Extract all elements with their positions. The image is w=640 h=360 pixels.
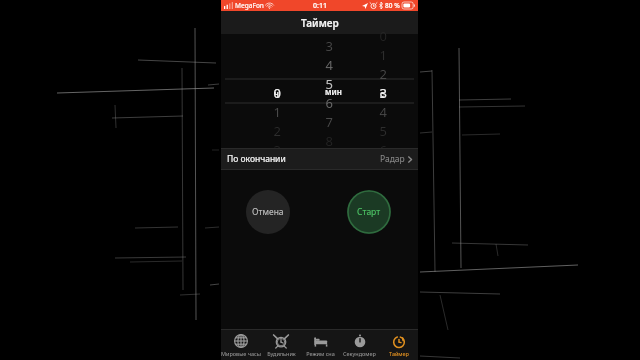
staticText: По окончании	[227, 153, 286, 165]
staticText: 6	[359, 141, 387, 159]
staticText: 0	[253, 84, 281, 102]
staticText: 4	[359, 103, 387, 121]
button[interactable]: По окончании	[221, 149, 418, 169]
staticText: 0	[359, 27, 387, 45]
button[interactable]: Будильник	[261, 330, 301, 360]
staticText: 3	[359, 84, 387, 102]
staticText: 2	[359, 65, 387, 83]
button[interactable]: Режим сна	[301, 330, 340, 360]
staticText: Будильник	[267, 350, 296, 357]
staticText: Отмена	[252, 206, 284, 218]
button[interactable]: Таймер	[379, 330, 418, 360]
staticText: 1	[359, 46, 387, 64]
staticText: 6	[305, 94, 333, 112]
staticText: 1	[253, 103, 281, 121]
staticText: Мировые часы	[221, 350, 261, 357]
staticText: ч	[274, 88, 279, 99]
staticText: 8	[305, 132, 333, 150]
button[interactable]: Отмена	[246, 190, 290, 234]
staticText: мин	[325, 86, 342, 97]
button[interactable]: Мировые часы	[221, 330, 261, 360]
staticText: 2	[253, 122, 281, 140]
staticText: 5	[359, 122, 387, 140]
staticText: MegaFon	[235, 1, 264, 10]
staticText: 3	[305, 37, 333, 55]
staticText: 5	[305, 75, 333, 93]
button[interactable]: Старт	[347, 190, 391, 234]
staticText: 7	[305, 113, 333, 131]
staticText: 4	[305, 56, 333, 74]
staticText: 0:11	[313, 1, 327, 11]
staticText: Секундомер	[343, 350, 376, 357]
button[interactable]: Секундомер	[340, 330, 379, 360]
staticText: 80 %	[385, 1, 400, 10]
staticText: Радар	[380, 153, 405, 165]
staticText: Режим сна	[306, 350, 335, 357]
staticText: 3	[253, 141, 281, 159]
staticText: Таймер	[301, 16, 339, 30]
staticText: Таймер	[389, 350, 409, 357]
staticText: Старт	[357, 206, 381, 218]
staticText: с	[380, 88, 385, 99]
